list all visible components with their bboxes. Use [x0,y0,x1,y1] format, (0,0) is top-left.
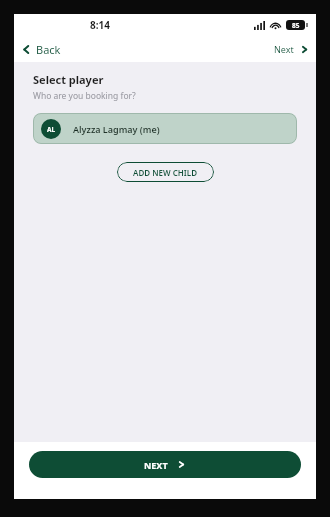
button[interactable]: AL [33,113,297,144]
staticText: 8:14 [90,18,110,32]
button[interactable]: Next [266,40,316,58]
staticText: AL [47,125,56,134]
staticText: Next [274,43,294,55]
staticText: Back [36,42,61,57]
button[interactable]: NEXT [29,451,301,478]
staticText: ADD NEW CHILD [133,167,198,178]
staticText: Select player [33,72,104,87]
staticText: Who are you booking for? [33,90,136,102]
button[interactable]: Back [14,39,69,60]
button[interactable]: ADD NEW CHILD [117,162,214,182]
staticText: NEXT [144,459,168,471]
staticText: Alyzza Lagmay (me) [73,123,160,135]
staticText: 85 [292,21,300,30]
